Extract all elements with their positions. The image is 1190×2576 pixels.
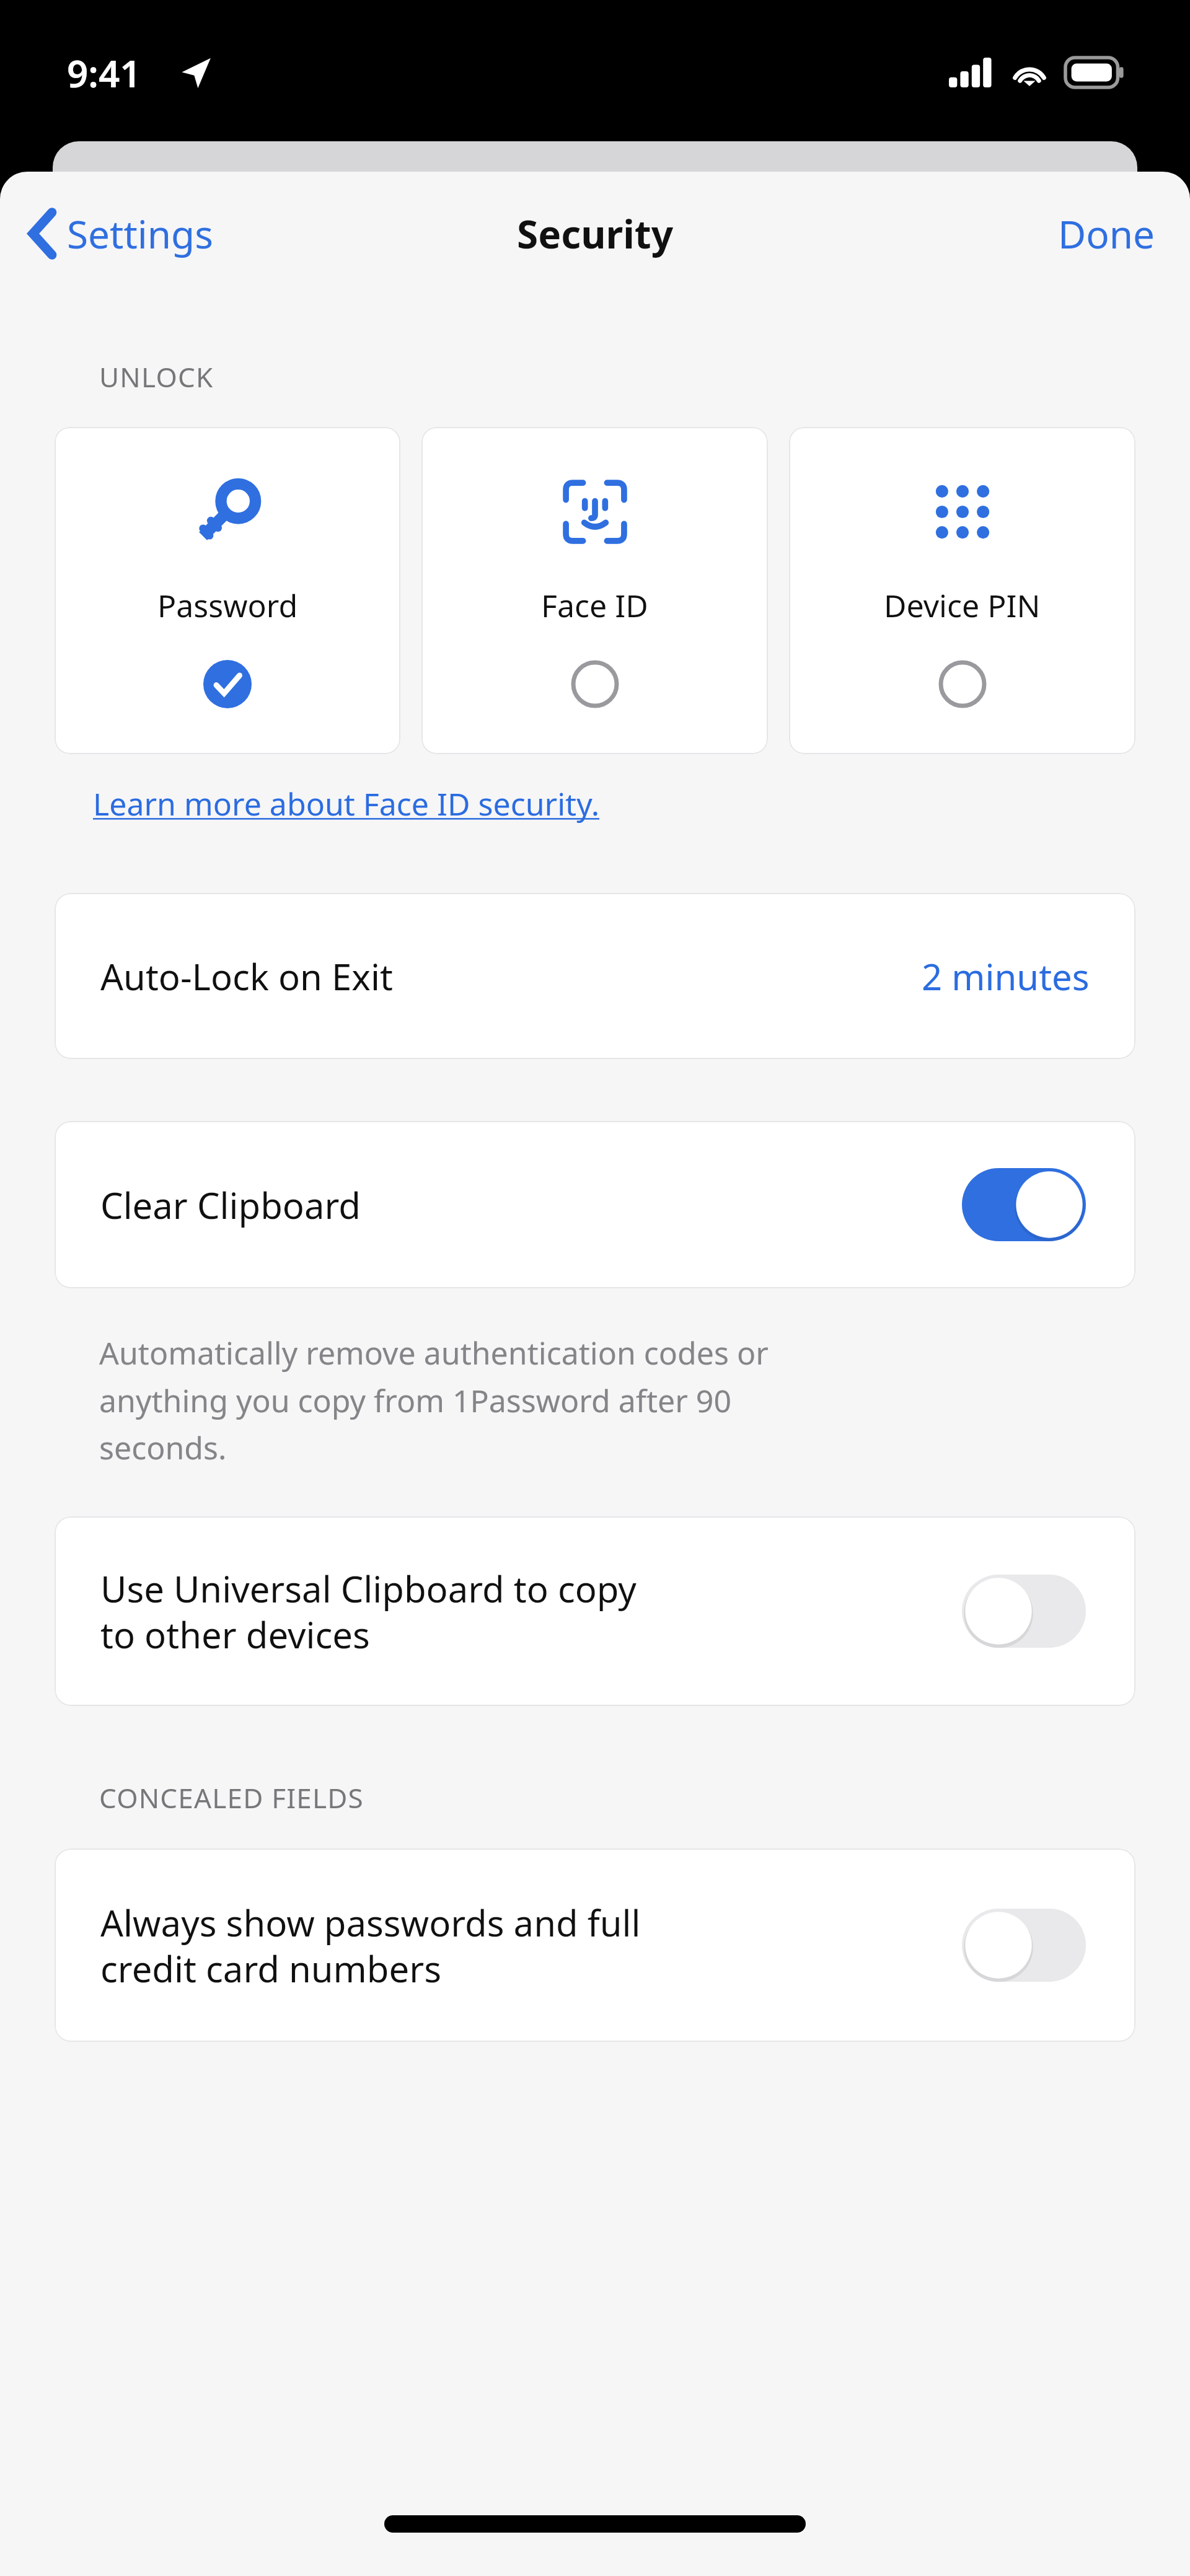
button[interactable]: Done — [1048, 200, 1165, 267]
staticText: 9:41 — [67, 48, 141, 99]
staticText: Security — [517, 208, 674, 260]
button[interactable]: Auto-Lock on Exit — [55, 893, 1135, 1059]
button[interactable]: Device PIN — [789, 427, 1135, 754]
staticText: Face ID — [541, 584, 648, 626]
staticText: Clear Clipboard — [100, 1180, 361, 1229]
staticText: CONCEALED FIELDS — [99, 1779, 364, 1816]
button[interactable]: Toggle on — [950, 1159, 1098, 1251]
button[interactable]: Clear Clipboard — [55, 1121, 1135, 1288]
button[interactable]: Learn more about Face ID security. — [93, 783, 600, 825]
staticText: Device PIN — [884, 584, 1041, 626]
button[interactable]: Face ID — [421, 427, 768, 754]
button[interactable]: Password — [55, 427, 400, 754]
button[interactable]: Toggle off — [950, 1565, 1098, 1657]
staticText: Learn more about Face ID security. — [93, 783, 600, 825]
button[interactable]: Always show passwords and full credit ca… — [55, 1848, 1135, 2042]
button[interactable]: Toggle off — [950, 1899, 1098, 1991]
button[interactable]: Use Universal Clipboard to copy to other… — [55, 1516, 1135, 1706]
staticText: Automatically remove authentication code… — [99, 1332, 769, 1468]
staticText: Auto-Lock on Exit — [100, 952, 393, 1001]
staticText: Done — [1058, 208, 1155, 260]
staticText: Settings — [67, 208, 213, 260]
staticText: Password — [157, 584, 298, 626]
staticText: Always show passwords and full credit ca… — [100, 1898, 641, 1993]
staticText: Use Universal Clipboard to copy to other… — [100, 1564, 637, 1659]
staticText: 2 minutes — [922, 952, 1090, 1001]
staticText: UNLOCK — [99, 358, 214, 395]
button[interactable]: Settings — [21, 201, 224, 266]
